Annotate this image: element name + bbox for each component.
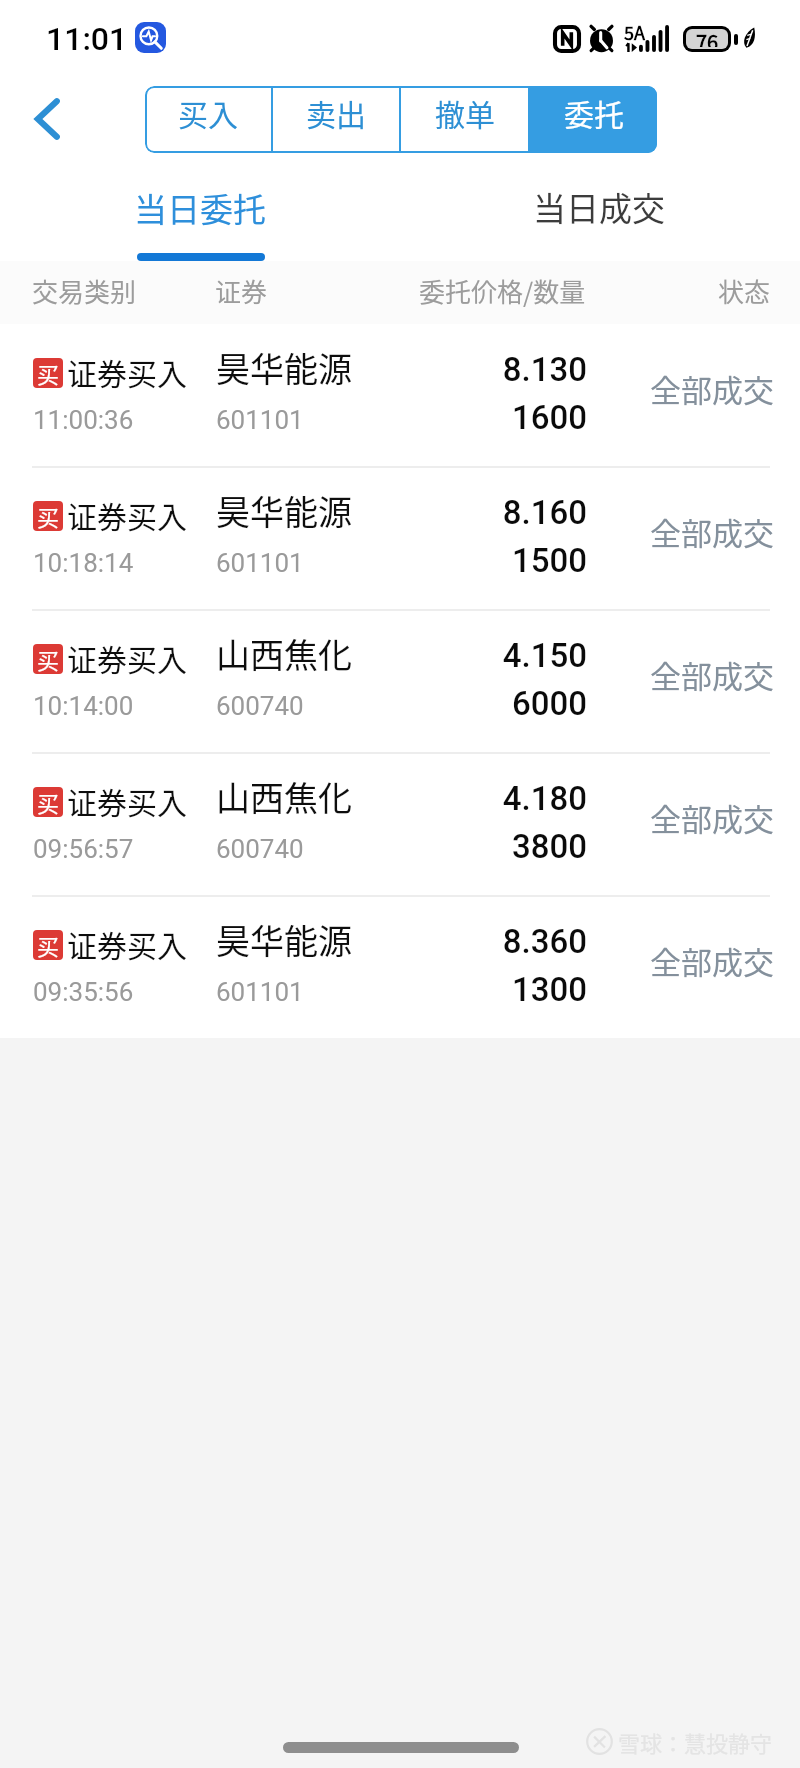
staticText: 证券买入 [67,922,187,965]
staticText: 11:00:36 [33,405,134,435]
staticText: 1500 [385,541,587,580]
staticText: 状态 [718,272,771,310]
button[interactable]: Back [14,85,82,153]
staticText: 09:35:56 [33,977,134,1007]
staticText: 山西焦化 [216,772,352,821]
staticText: 600740 [216,834,304,864]
staticText: 全部成交 [650,938,774,983]
button[interactable]: 卖出 [273,86,399,153]
staticText: 11:01 [46,20,128,58]
staticText: 8.160 [385,493,587,532]
staticText: 买 [37,644,60,673]
staticText: 601101 [216,405,304,435]
staticText: 09:56:57 [33,834,134,864]
staticText: 1300 [385,970,587,1009]
staticText: 5A [624,19,645,45]
staticText: 证券买入 [67,493,187,536]
staticText: 交易类别 [32,272,137,310]
staticText: 卖出 [306,91,366,134]
staticText: 撤单 [435,91,495,134]
staticText: 昊华能源 [216,343,352,392]
staticText: 8.130 [385,350,587,389]
button[interactable]: 委托 [530,86,657,153]
staticText: 10:18:14 [33,548,134,578]
staticText: 证券 [215,272,268,310]
staticText: 买入 [178,91,238,134]
staticText: 雪球：慧投静守 [618,1726,773,1758]
staticText: 10:14:00 [33,691,134,721]
button[interactable]: 买 [0,610,800,753]
staticText: 买 [37,358,60,387]
staticText: 证券买入 [67,636,187,679]
staticText: 买 [37,501,60,530]
button[interactable]: 买 [0,896,800,1039]
staticText: 4.150 [385,636,587,675]
staticText: 601101 [216,977,304,1007]
staticText: 当日委托 [134,184,266,232]
button[interactable]: 买 [0,324,800,467]
button[interactable]: 当日成交 [500,175,700,270]
staticText: 证券买入 [67,350,187,393]
staticText: 买 [37,787,60,816]
staticText: 当日成交 [533,183,665,231]
staticText: 委托价格/数量 [419,272,586,310]
staticText: 山西焦化 [216,629,352,678]
staticText: 买 [37,930,60,959]
staticText: 8.360 [385,922,587,961]
button[interactable]: 买 [0,753,800,896]
button[interactable]: 撤单 [401,86,528,153]
staticText: 全部成交 [650,366,774,411]
staticText: 1600 [385,398,587,437]
staticText: 昊华能源 [216,915,352,964]
staticText: 3800 [385,827,587,866]
button[interactable]: 买 [0,467,800,610]
staticText: 昊华能源 [216,486,352,535]
staticText: 全部成交 [650,509,774,554]
staticText: 601101 [216,548,304,578]
button[interactable]: 当日委托 [100,175,300,270]
staticText: 全部成交 [650,652,774,697]
staticText: 委托 [564,91,624,134]
button[interactable]: 买入 [145,86,271,153]
staticText: 4.180 [385,779,587,818]
staticText: 全部成交 [650,795,774,840]
staticText: 600740 [216,691,304,721]
staticText: 6000 [385,684,587,723]
staticText: 证券买入 [67,779,187,822]
staticText: 76 [696,29,719,47]
